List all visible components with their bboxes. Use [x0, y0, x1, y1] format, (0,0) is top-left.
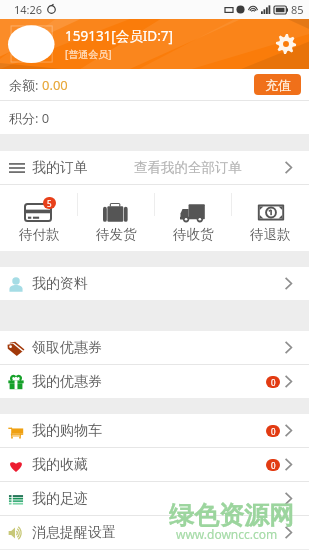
staticText: 消息提醒设置	[32, 524, 116, 542]
button[interactable]: 5	[0, 185, 78, 243]
staticText: 0	[271, 460, 276, 471]
button[interactable]: 我的足迹	[0, 482, 309, 515]
staticText: 绿色资源网	[169, 500, 294, 531]
staticText: [普通会员]	[65, 47, 112, 61]
staticText: 待发货	[96, 226, 137, 243]
staticText: 我的优惠券	[32, 373, 102, 391]
staticText: 0	[271, 377, 276, 388]
staticText: 159131[会员ID:7]	[65, 27, 173, 45]
button[interactable]: 待退款	[232, 185, 309, 243]
staticText: 充值	[265, 77, 291, 93]
button[interactable]: 我的优惠券	[0, 365, 309, 398]
staticText: 我的订单	[32, 159, 88, 177]
staticText: 领取优惠券	[32, 339, 102, 357]
staticText: 我的资料	[32, 275, 88, 293]
staticText: 待退款	[250, 226, 291, 243]
button[interactable]: 待发货	[78, 185, 155, 243]
staticText: 待收货	[173, 226, 214, 243]
staticText: 我的收藏	[32, 456, 88, 474]
staticText: 查看我的全部订单	[134, 159, 242, 176]
staticText: 积分: 0	[9, 109, 50, 127]
staticText: 我的购物车	[32, 422, 102, 440]
button[interactable]: 我的收藏	[0, 448, 309, 481]
button[interactable]: 我的订单	[0, 151, 309, 184]
button[interactable]: 充值	[254, 74, 301, 95]
button[interactable]: 我的资料	[0, 267, 309, 300]
staticText: 14:26	[14, 2, 43, 17]
button[interactable]: 消息提醒设置	[0, 516, 309, 549]
staticText: 待付款	[19, 226, 60, 243]
staticText: 5	[47, 198, 52, 209]
button[interactable]: 我的购物车	[0, 414, 309, 447]
staticText: 余额:	[9, 76, 42, 94]
staticText: 0.00	[42, 76, 68, 94]
button[interactable]: Settings	[275, 33, 297, 55]
button[interactable]: 待收货	[155, 185, 232, 243]
staticText: 85	[291, 2, 304, 17]
button[interactable]: 领取优惠券	[0, 331, 309, 364]
staticText: 0	[271, 426, 276, 437]
staticText: 我的足迹	[32, 490, 88, 508]
staticText: www.downcc.com	[176, 526, 278, 542]
